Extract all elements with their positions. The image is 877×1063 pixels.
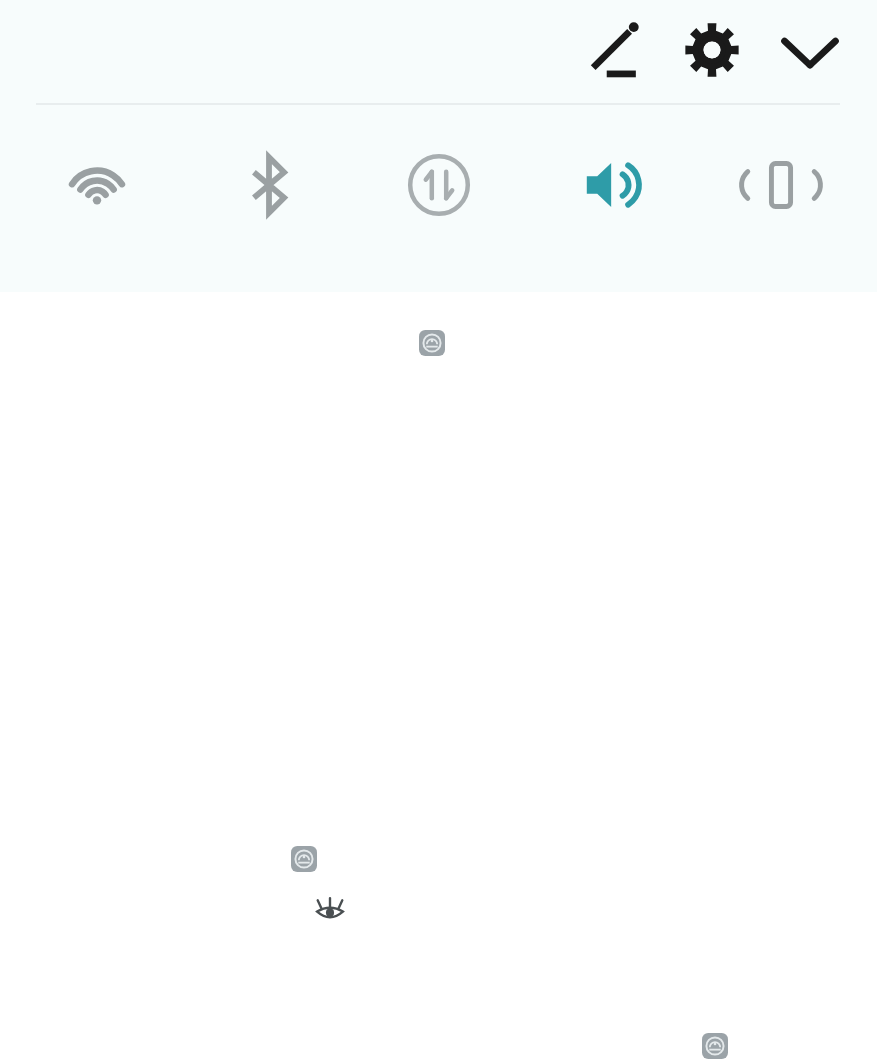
button[interactable]: Mobile data [395,141,483,229]
button[interactable]: App icon [415,326,449,360]
button[interactable]: Sound [566,141,654,229]
button[interactable]: Edit [578,14,650,86]
button[interactable]: Eye comfort [312,893,348,929]
button[interactable]: Wi-Fi [53,141,141,229]
button[interactable]: Bluetooth [225,141,313,229]
button[interactable]: App icon [287,842,321,876]
button[interactable]: Settings [676,14,748,86]
button[interactable]: App icon [698,1029,732,1063]
button[interactable]: Collapse [774,14,846,86]
button[interactable]: Vibrate [737,141,825,229]
